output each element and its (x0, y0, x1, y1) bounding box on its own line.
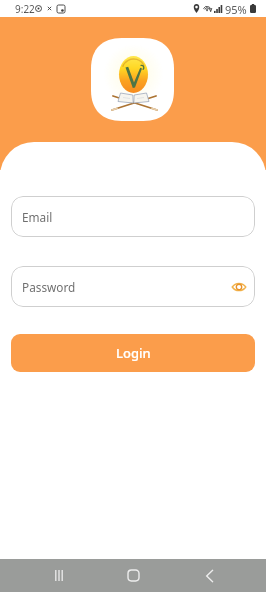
button[interactable]: Show password (230, 278, 248, 296)
staticText: Login (116, 344, 151, 362)
button[interactable]: Password (11, 266, 255, 307)
button[interactable]: Email (11, 196, 255, 237)
staticText: Password (22, 279, 76, 295)
button[interactable]: Login (11, 334, 255, 372)
button[interactable]: Back (193, 559, 226, 592)
staticText: Email (22, 209, 53, 225)
button[interactable]: Recent apps (42, 559, 75, 592)
button[interactable]: Home (117, 559, 150, 592)
staticText: 95% (225, 2, 247, 17)
staticText: 9:22 (15, 2, 35, 16)
